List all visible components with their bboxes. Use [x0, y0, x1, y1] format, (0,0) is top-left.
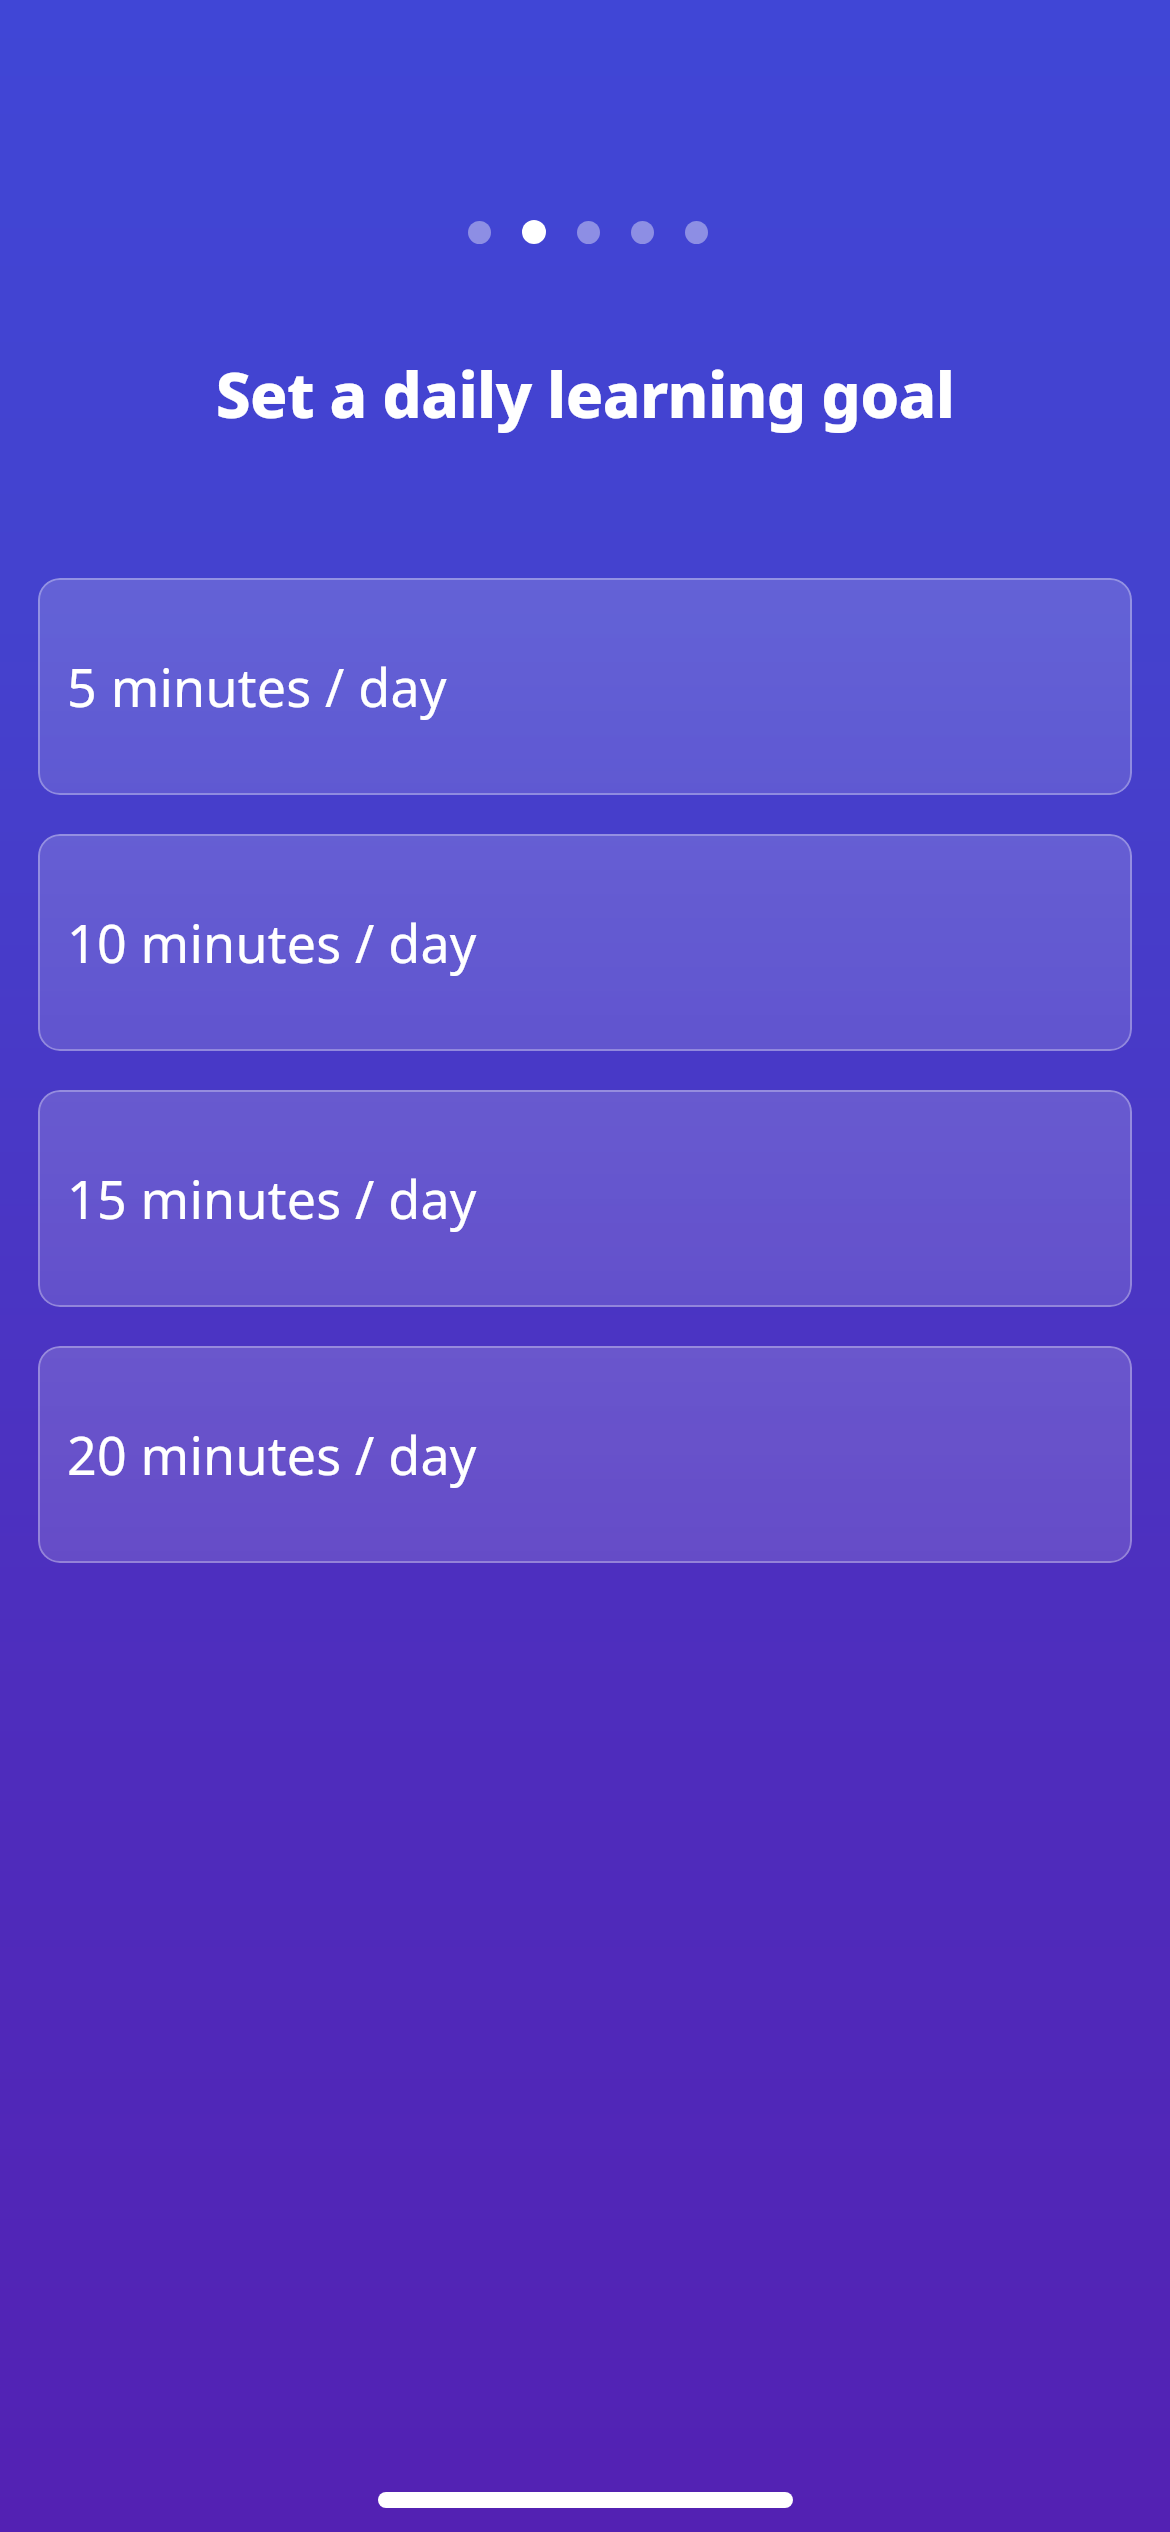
other: Page 2 of 5 — [468, 220, 708, 244]
button[interactable]: 20 minutes / day — [38, 1346, 1132, 1563]
staticText: Set a daily learning goal — [0, 352, 1170, 436]
staticText: 10 minutes / day — [67, 907, 477, 978]
button[interactable]: 15 minutes / day — [38, 1090, 1132, 1307]
button[interactable]: 5 minutes / day — [38, 578, 1132, 795]
staticText: 20 minutes / day — [67, 1419, 477, 1490]
staticText: 5 minutes / day — [67, 651, 447, 722]
staticText: 15 minutes / day — [67, 1163, 477, 1234]
button[interactable]: 10 minutes / day — [38, 834, 1132, 1051]
